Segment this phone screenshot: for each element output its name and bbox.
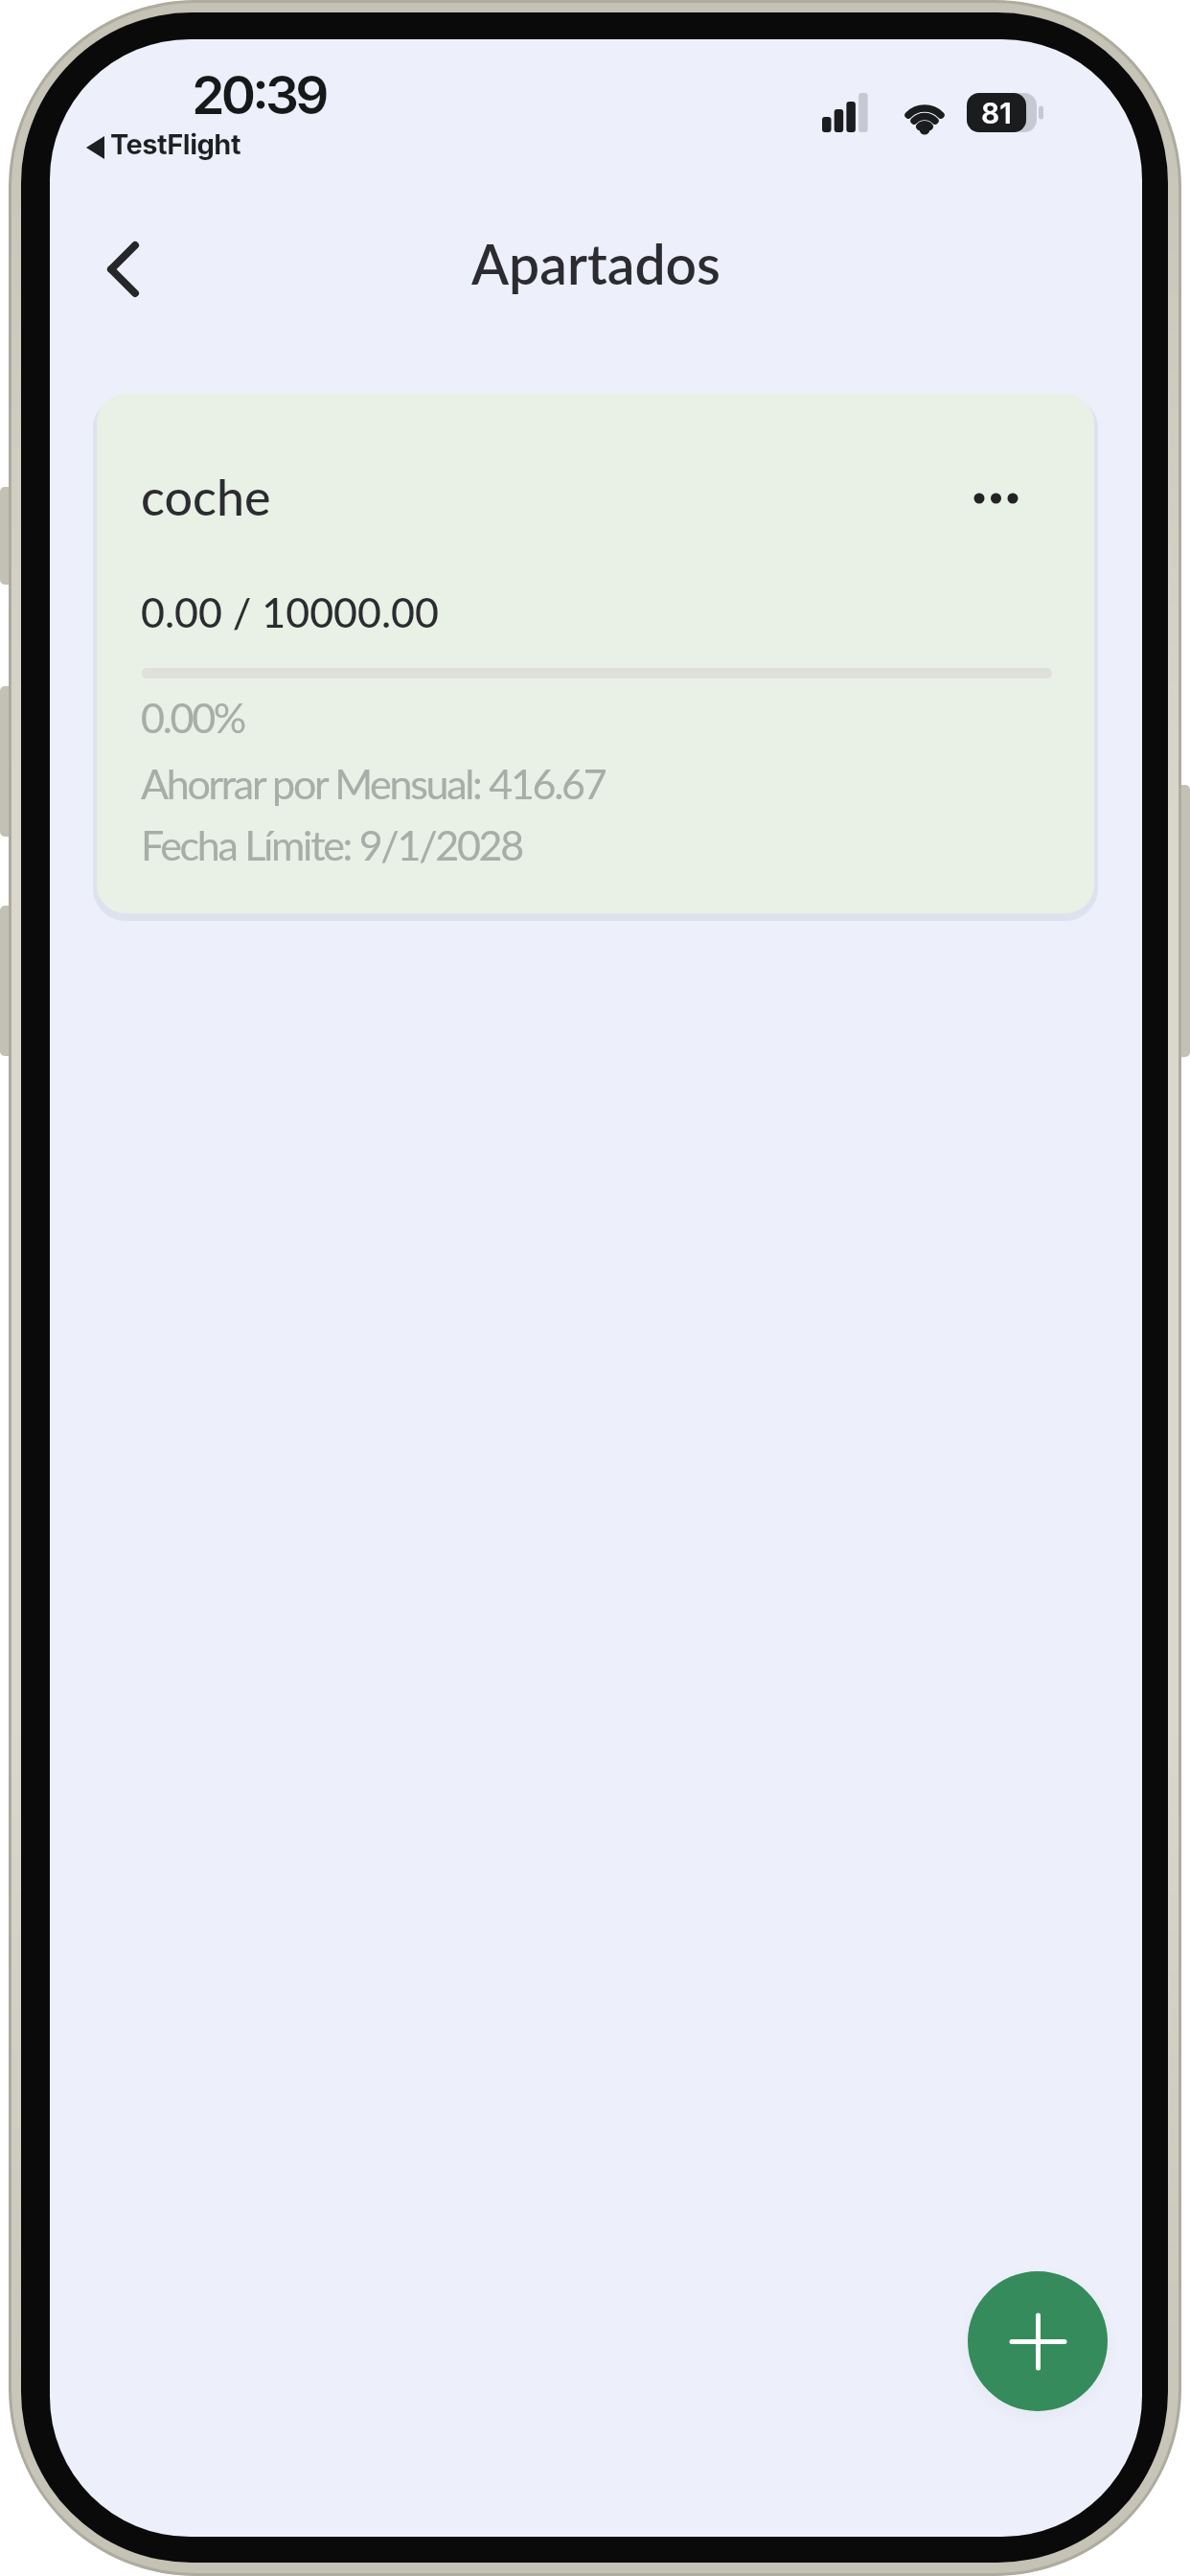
staticText: Apartados xyxy=(50,231,1142,296)
staticText: 0.00% xyxy=(141,693,244,743)
button[interactable] xyxy=(80,218,185,323)
staticText: Ahorrar por Mensual: 416.67 xyxy=(141,759,606,809)
button[interactable]: coche xyxy=(97,394,1094,913)
staticText: TestFlight xyxy=(110,127,241,161)
staticText: coche xyxy=(141,467,271,526)
button[interactable] xyxy=(921,455,1064,541)
staticText: 81 xyxy=(981,96,1012,130)
staticText: Fecha Límite: 9/1/2028 xyxy=(141,820,522,870)
button[interactable] xyxy=(968,2271,1108,2411)
staticText: 0.00 / 10000.00 xyxy=(141,587,439,637)
staticText: 20:39 xyxy=(144,63,374,127)
